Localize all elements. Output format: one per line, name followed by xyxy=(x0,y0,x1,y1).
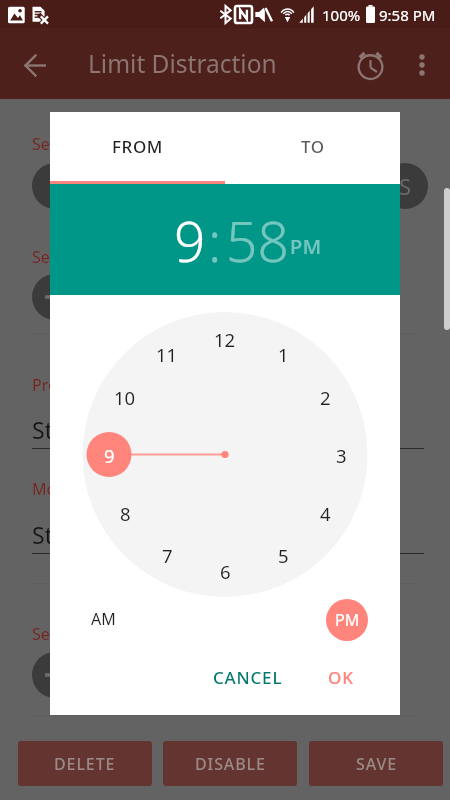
staticText: 12 xyxy=(214,327,236,352)
button[interactable]: DISABLE xyxy=(163,741,297,786)
button[interactable]: 10 xyxy=(105,381,145,413)
staticText: 8 xyxy=(120,501,131,526)
staticText: 100% xyxy=(322,5,361,25)
staticText: Study xyxy=(32,414,94,445)
button[interactable]: DELETE xyxy=(18,741,152,786)
button[interactable]: 3 xyxy=(321,439,361,471)
staticText: DISABLE xyxy=(195,753,266,775)
button[interactable]: 4 xyxy=(305,497,345,529)
button[interactable]: Alarm xyxy=(346,41,394,89)
staticText: Profile Name xyxy=(32,374,130,396)
staticText: Select Apps xyxy=(32,246,119,268)
staticText: PM xyxy=(335,609,360,631)
staticText: 11 xyxy=(156,342,178,367)
staticText: S xyxy=(399,171,412,201)
button[interactable]: 1 xyxy=(263,338,303,370)
staticText: AM xyxy=(91,608,116,630)
staticText: 1 xyxy=(278,342,289,367)
button[interactable]: Add day xyxy=(32,652,78,698)
staticText: 4 xyxy=(320,501,331,526)
staticText: Selected Apps xyxy=(32,133,138,155)
staticText: 9 xyxy=(104,443,115,468)
button[interactable]: 12 xyxy=(205,323,245,355)
button[interactable]: 9 xyxy=(89,439,129,471)
button[interactable]: More options xyxy=(398,41,446,89)
staticText: 7 xyxy=(162,543,173,568)
button[interactable]: CANCEL xyxy=(201,656,295,698)
button[interactable]: S xyxy=(382,163,428,209)
button[interactable]: SAVE xyxy=(309,741,443,786)
staticText: 2 xyxy=(320,385,331,410)
staticText: 3 xyxy=(336,443,347,468)
button[interactable]: AM xyxy=(82,598,124,640)
button[interactable]: Add app xyxy=(32,274,78,320)
button[interactable]: Selected app xyxy=(32,163,78,209)
button[interactable]: PM xyxy=(326,599,368,641)
button[interactable]: TO xyxy=(225,112,400,181)
staticText: 10 xyxy=(114,385,136,410)
staticText: : xyxy=(208,203,222,278)
button[interactable]: OK xyxy=(310,656,372,698)
button[interactable]: 5 xyxy=(263,539,303,571)
staticText: 5 xyxy=(278,543,289,568)
button[interactable]: 7 xyxy=(147,539,187,571)
staticText: TO xyxy=(301,135,325,158)
staticText: CANCEL xyxy=(213,666,283,689)
staticText: SAVE xyxy=(356,753,397,775)
button[interactable]: 8 xyxy=(105,497,145,529)
button[interactable]: 9 xyxy=(174,203,206,278)
staticText: Limit Distraction xyxy=(88,47,277,80)
staticText: Select Days xyxy=(32,623,118,645)
button[interactable]: Back xyxy=(11,41,59,89)
button[interactable]: 2 xyxy=(305,381,345,413)
staticText: Mode xyxy=(32,478,76,500)
button[interactable]: 6 xyxy=(205,555,245,587)
staticText: 9:58 PM xyxy=(379,5,436,25)
staticText: Strict xyxy=(32,519,88,550)
staticText: FROM xyxy=(112,135,164,158)
button[interactable]: 11 xyxy=(147,338,187,370)
button[interactable]: PM xyxy=(290,233,322,260)
staticText: OK xyxy=(328,666,354,689)
button[interactable]: 58 xyxy=(226,203,289,278)
staticText: 6 xyxy=(220,559,231,584)
button[interactable]: FROM xyxy=(50,112,225,181)
staticText: DELETE xyxy=(54,753,116,775)
